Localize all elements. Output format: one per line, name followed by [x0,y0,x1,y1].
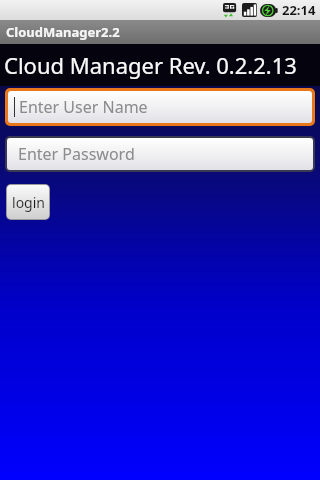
other: Signal strength [242,3,257,17]
button[interactable]: Enter User Name [8,91,312,123]
staticText: 22:14 [282,1,316,19]
button[interactable]: login [7,185,49,219]
other: Battery [260,4,278,17]
staticText: Enter User Name [19,96,148,118]
button[interactable]: Enter Password [7,138,313,170]
staticText: login [12,193,45,212]
staticText: Enter Password [18,143,135,165]
staticText: CloudManager2.2 [6,23,120,41]
staticText: Cloud Manager Rev. 0.2.2.13 [4,50,297,80]
other: 3G data [223,3,239,18]
